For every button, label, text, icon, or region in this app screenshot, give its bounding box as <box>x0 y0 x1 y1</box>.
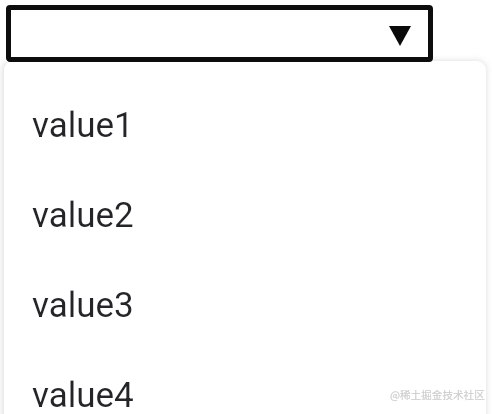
button[interactable]: Spinner, no value selected <box>6 5 433 62</box>
button[interactable]: value3 <box>4 260 486 350</box>
button[interactable]: value1 <box>4 80 486 170</box>
button[interactable]: value2 <box>4 170 486 260</box>
staticText: value3 <box>32 285 134 326</box>
button[interactable]: value4 <box>4 350 486 414</box>
staticText: @稀土掘金技术社区 <box>390 387 485 402</box>
staticText: value4 <box>32 375 134 414</box>
staticText: value1 <box>32 105 134 146</box>
staticText: value2 <box>32 195 134 236</box>
